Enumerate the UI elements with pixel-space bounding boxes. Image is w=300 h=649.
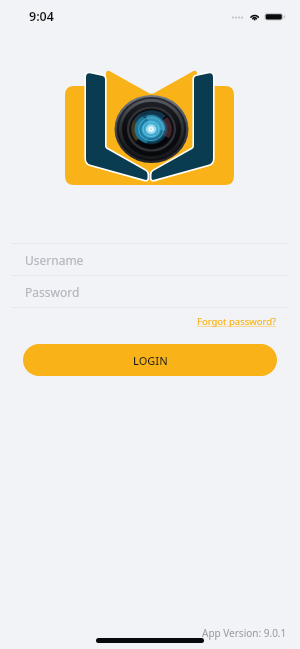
button[interactable]: LOGIN <box>23 344 277 376</box>
staticText: Password <box>25 284 80 300</box>
button[interactable]: Forgot password? <box>197 312 300 331</box>
button[interactable]: Password <box>0 276 300 307</box>
button[interactable]: Username <box>0 244 300 275</box>
staticText: Username <box>25 252 84 268</box>
staticText: 9:04 <box>29 8 54 25</box>
staticText: App Version: 9.0.1 <box>202 626 287 640</box>
staticText: Forgot password? <box>197 315 277 328</box>
staticText: LOGIN <box>133 353 168 368</box>
